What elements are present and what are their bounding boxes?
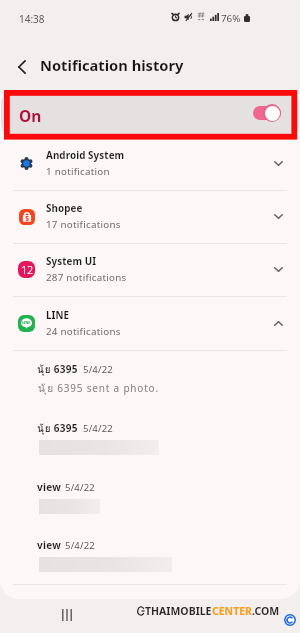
staticText: นุ้ย 6395 sent a photo. xyxy=(38,381,159,397)
button[interactable]: Recents xyxy=(50,598,84,632)
staticText: 5/4/22 xyxy=(83,422,114,435)
staticText: 287 notifications xyxy=(46,271,127,284)
staticText: System UI xyxy=(46,255,97,268)
staticText: นุ้ย 6395 xyxy=(37,362,78,378)
staticText: 24 notifications xyxy=(46,325,121,338)
staticText: Android System xyxy=(46,149,125,162)
staticText: Notification history xyxy=(40,55,184,75)
staticText: 76% xyxy=(221,12,241,25)
staticText: LINE xyxy=(46,309,70,322)
button[interactable]: นุ้ย 6395 xyxy=(0,409,300,467)
staticText: 5/4/22 xyxy=(83,363,114,376)
button[interactable]: view xyxy=(0,468,300,526)
button[interactable]: On xyxy=(1,93,299,134)
button[interactable]: Back xyxy=(8,53,36,81)
staticText: THAIMOBILE xyxy=(145,604,212,618)
staticText: view xyxy=(37,480,62,494)
button[interactable]: 12 xyxy=(0,243,300,296)
staticText: 5/4/22 xyxy=(65,539,96,552)
staticText: 1 notification xyxy=(46,165,110,178)
staticText: 17 notifications xyxy=(46,218,121,231)
staticText: .COM xyxy=(252,604,280,618)
staticText: LINE xyxy=(22,320,31,325)
staticText: นุ้ย 6395 xyxy=(37,421,78,437)
staticText: 12 xyxy=(21,262,33,277)
staticText: On xyxy=(19,105,42,126)
button[interactable]: LINE xyxy=(0,297,300,350)
button[interactable]: นุ้ย 6395 xyxy=(0,350,300,408)
staticText: view xyxy=(37,538,62,552)
staticText: CENTER xyxy=(212,604,252,618)
button[interactable]: view xyxy=(0,526,300,584)
button[interactable]: Android System xyxy=(0,137,300,190)
staticText: Shopee xyxy=(46,202,83,215)
staticText: 5/4/22 xyxy=(65,481,96,494)
staticText: 14:38 xyxy=(19,12,45,26)
button[interactable]: Shopee xyxy=(0,190,300,243)
